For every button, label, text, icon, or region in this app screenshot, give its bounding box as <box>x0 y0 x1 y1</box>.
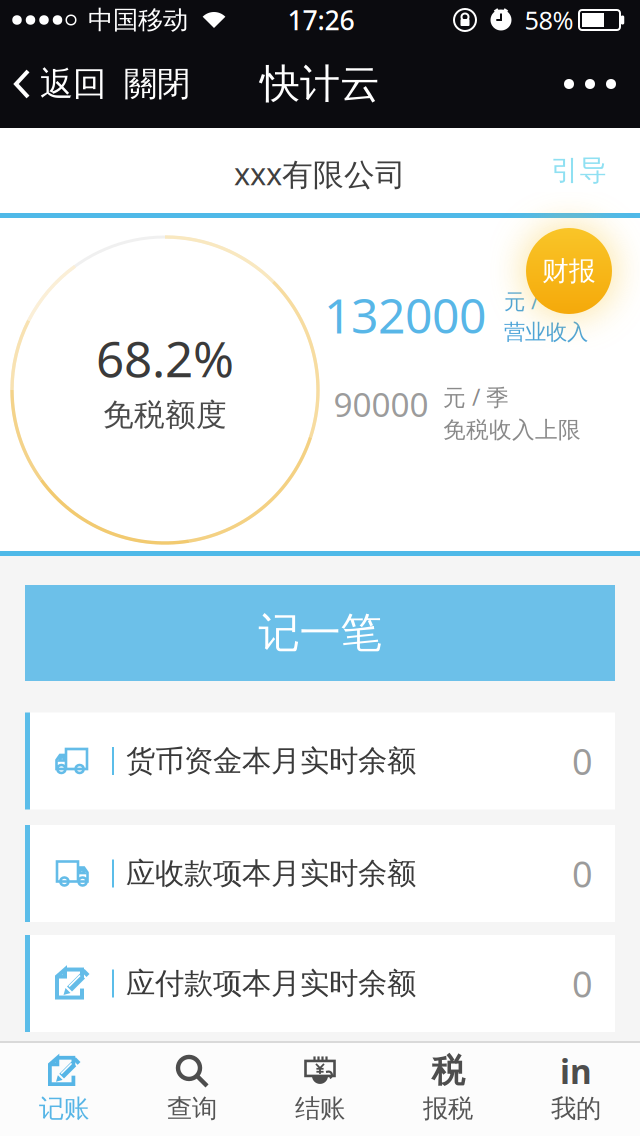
button[interactable]: 查询 <box>128 1043 256 1135</box>
staticText: 90000 <box>333 382 428 426</box>
button[interactable]: 返回 <box>0 63 106 104</box>
staticText: 结账 <box>295 1093 345 1124</box>
staticText: 免税收入上限 <box>443 416 581 444</box>
staticText: 0 <box>572 960 593 1007</box>
button[interactable]: in <box>512 1043 640 1135</box>
button[interactable]: 货币资金本月实时余额 <box>25 712 615 809</box>
staticText: 查询 <box>167 1093 217 1124</box>
staticText: 返回 <box>40 63 106 104</box>
staticText: 应收款项本月实时余额 <box>126 855 416 891</box>
staticText: 68.2% <box>96 325 234 391</box>
staticText: 引导 <box>551 153 607 188</box>
button[interactable]: 更多 <box>554 54 640 114</box>
staticText: 报税 <box>423 1093 473 1124</box>
button[interactable]: 记一笔 <box>25 585 615 681</box>
button[interactable]: 记账 <box>0 1043 128 1135</box>
staticText: 货币资金本月实时余额 <box>126 743 416 779</box>
staticText: 应付款项本月实时余额 <box>126 965 416 1001</box>
staticText: 0 <box>572 850 593 897</box>
staticText: 营业收入 <box>504 319 588 345</box>
staticText: 财报 <box>542 255 596 287</box>
staticText: 元 / 季 <box>443 382 509 412</box>
staticText: 记账 <box>39 1093 89 1124</box>
staticText: 元 / <box>504 287 539 315</box>
staticText: 快计云 <box>260 59 380 108</box>
staticText: 17:26 <box>287 2 354 38</box>
button[interactable]: 结账 <box>256 1043 384 1135</box>
staticText: 中国移动 <box>88 4 188 35</box>
staticText: 58% <box>524 3 573 37</box>
staticText: 免税额度 <box>103 396 227 434</box>
button[interactable]: 应付款项本月实时余额 <box>25 935 615 1032</box>
staticText: 记一笔 <box>258 608 381 658</box>
staticText: in <box>560 1049 592 1093</box>
staticText: 我的 <box>551 1093 601 1124</box>
button[interactable]: 關閉 <box>106 63 190 104</box>
button[interactable]: 应收款项本月实时余额 <box>25 825 615 922</box>
button[interactable]: 财报 <box>526 228 612 314</box>
button[interactable]: 税 <box>384 1043 512 1135</box>
button[interactable]: 引导 <box>0 153 640 188</box>
staticText: 0 <box>572 737 593 785</box>
staticText: 關閉 <box>124 63 190 104</box>
staticText: xxx有限公司 <box>234 153 406 194</box>
staticText: 132000 <box>324 283 486 347</box>
staticText: 税 <box>431 1050 464 1091</box>
